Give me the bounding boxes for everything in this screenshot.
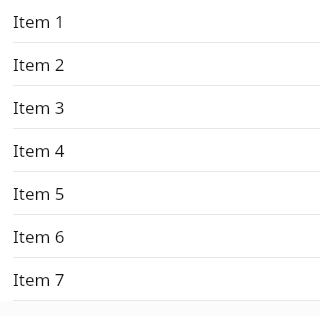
button[interactable]: Item 5	[0, 172, 320, 215]
button[interactable]: Item 4	[0, 129, 320, 172]
staticText: Item 3	[13, 96, 65, 119]
button[interactable]: Item 7	[0, 258, 320, 301]
staticText: Item 1	[13, 10, 65, 33]
button[interactable]: Item 2	[0, 43, 320, 86]
staticText: Item 2	[13, 53, 65, 76]
staticText: Item 6	[13, 225, 65, 248]
button[interactable]: Item 1	[0, 0, 320, 43]
button[interactable]: Item 3	[0, 86, 320, 129]
staticText: Item 5	[13, 182, 65, 205]
button[interactable]: Item 6	[0, 215, 320, 258]
staticText: Item 4	[13, 139, 65, 162]
staticText: Item 7	[13, 268, 65, 291]
